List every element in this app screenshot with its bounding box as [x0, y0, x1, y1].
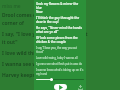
button[interactable]: [36, 76, 84, 82]
staticText: I say, "I love you, why don't you cut: [2, 31, 88, 38]
button[interactable]: Share: [76, 84, 84, 90]
staticText: Grab my flowers & mirror the blur Now: [36, 2, 84, 14]
staticText: Drool comes out the corner of the: [2, 12, 83, 19]
staticText: miss me: [2, 3, 21, 9]
staticText: He says, "Never mind the hands what are …: [36, 26, 84, 34]
staticText: I love wild things but not at all: [2, 50, 76, 57]
staticText: I say "I love you, the way you cut it ou…: [36, 46, 84, 54]
staticText: I wanna see what's in the balls: [2, 61, 77, 68]
staticText: I gonna see what flesh put in was do: [36, 62, 84, 66]
button[interactable]: Play: [54, 84, 67, 90]
staticText: Of lock some pieces from the chicken & t…: [36, 36, 84, 44]
staticText: I wanna know what's taking up on it's my…: [36, 68, 84, 76]
staticText: Harvey keeps the door with: [2, 72, 70, 79]
staticText: I'll think the guy throught the door in …: [36, 16, 84, 24]
staticText: it out": [2, 39, 18, 46]
staticText: Love wild swing, baby I wanna all: [36, 56, 84, 60]
staticText: corner of: [2, 20, 24, 27]
